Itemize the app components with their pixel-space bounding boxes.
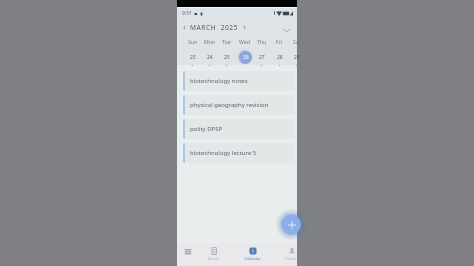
staticText: Fri — [276, 38, 283, 45]
staticText: physical geography revision — [190, 101, 269, 109]
staticText: MARCH 2025 — [190, 23, 238, 32]
button[interactable]: 29 — [288, 48, 305, 66]
button[interactable]: 26 — [236, 48, 253, 66]
staticText: Books — [208, 256, 220, 261]
staticText: Wed — [239, 38, 250, 45]
button[interactable]: Expand calendar — [281, 25, 291, 35]
button[interactable]: biotechnology notes — [183, 71, 295, 91]
button[interactable]: polity DPSP — [183, 119, 295, 139]
staticText: Sun — [188, 38, 198, 45]
button[interactable]: Add note — [282, 215, 301, 234]
staticText: 9:51 — [182, 10, 192, 17]
button[interactable]: 24 — [201, 48, 218, 66]
staticText: Mon — [204, 38, 216, 45]
button[interactable]: 25 — [218, 48, 235, 66]
staticText: polity DPSP — [190, 125, 223, 133]
staticText: Thu — [257, 38, 267, 45]
staticText: 23 — [190, 54, 196, 61]
button[interactable]: Calendar — [241, 243, 263, 266]
button[interactable]: 27 — [253, 48, 270, 66]
button[interactable]: physical geography revision — [183, 95, 295, 115]
staticText: 24 — [207, 54, 213, 61]
staticText: Sat — [293, 38, 301, 45]
button[interactable]: Next month — [240, 23, 248, 31]
staticText: 28 — [277, 54, 283, 61]
button[interactable]: 23 — [184, 48, 201, 66]
button[interactable]: Previous month — [180, 23, 188, 31]
staticText: Calendar — [244, 256, 261, 261]
staticText: Profile — [285, 256, 298, 261]
staticText: biotechnology notes — [190, 77, 248, 85]
button[interactable]: Profile — [280, 243, 302, 266]
staticText: Tue — [222, 38, 231, 45]
staticText: 26 — [243, 54, 249, 61]
staticText: 25 — [224, 54, 230, 61]
button[interactable]: 28 — [271, 48, 288, 66]
staticText: 27 — [259, 54, 265, 61]
button[interactable]: Books — [203, 243, 225, 266]
staticText: 29 — [294, 54, 300, 61]
staticText: biotechnology lecture 5 — [190, 149, 257, 157]
button[interactable]: Menu — [177, 243, 199, 266]
button[interactable]: biotechnology lecture 5 — [183, 143, 295, 163]
